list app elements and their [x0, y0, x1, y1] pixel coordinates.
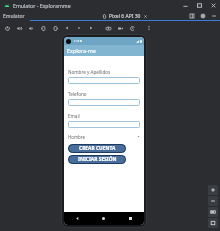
button[interactable]: Navigate left [63, 24, 71, 32]
button[interactable]: Close [210, 2, 217, 9]
button[interactable]: Screenshot [104, 24, 112, 32]
button[interactable]: Minimize [182, 2, 189, 9]
staticText: Hombre [68, 134, 85, 140]
button[interactable]: Split [189, 13, 195, 19]
button[interactable]: Actual size [208, 207, 218, 217]
button[interactable]: Volume up [15, 24, 23, 32]
staticText: Email [68, 113, 80, 119]
button[interactable]: Pixel 6 API 30 [30, 11, 220, 21]
button[interactable]: Fit to window [208, 218, 218, 228]
button[interactable]: Navigate right [87, 24, 95, 32]
button[interactable]: More [145, 24, 153, 32]
button[interactable]: CREAR CUENTA [68, 144, 126, 153]
button[interactable]: Rotate right [51, 24, 59, 32]
staticText: Nombre y Apellidos [68, 69, 111, 75]
button[interactable]: Maximize [196, 2, 203, 9]
staticText: Explora-me [67, 47, 96, 54]
staticText: Pixel 6 API 30 [109, 13, 141, 20]
staticText: Emulator - Exploramme [13, 2, 71, 9]
staticText: Telefono [68, 91, 87, 97]
button[interactable]: Hombre [68, 133, 140, 140]
staticText: Emulator [3, 13, 25, 20]
button[interactable]: History [128, 24, 136, 32]
button[interactable]: Power [3, 24, 11, 32]
button[interactable]: Navigate up [75, 24, 83, 32]
button[interactable]: Record screen [116, 24, 124, 32]
button[interactable]: Zoom out [208, 196, 218, 206]
button[interactable]: Settings [200, 13, 206, 19]
button[interactable] [68, 121, 140, 128]
button[interactable]: INICIAR SESIÓN [68, 155, 126, 164]
button[interactable]: Close tab [143, 14, 148, 19]
button[interactable]: Zoom in [208, 185, 218, 195]
button[interactable]: Volume down [27, 24, 35, 32]
button[interactable]: Hide [211, 13, 217, 19]
button[interactable]: Recents [126, 214, 135, 223]
button[interactable]: Home [99, 214, 108, 223]
staticText: CREAR CUENTA [79, 145, 116, 152]
button[interactable] [68, 99, 140, 106]
button[interactable]: Back [73, 214, 82, 223]
staticText: INICIAR SESIÓN [78, 156, 117, 163]
button[interactable]: Rotate left [39, 24, 47, 32]
button[interactable] [68, 77, 140, 84]
